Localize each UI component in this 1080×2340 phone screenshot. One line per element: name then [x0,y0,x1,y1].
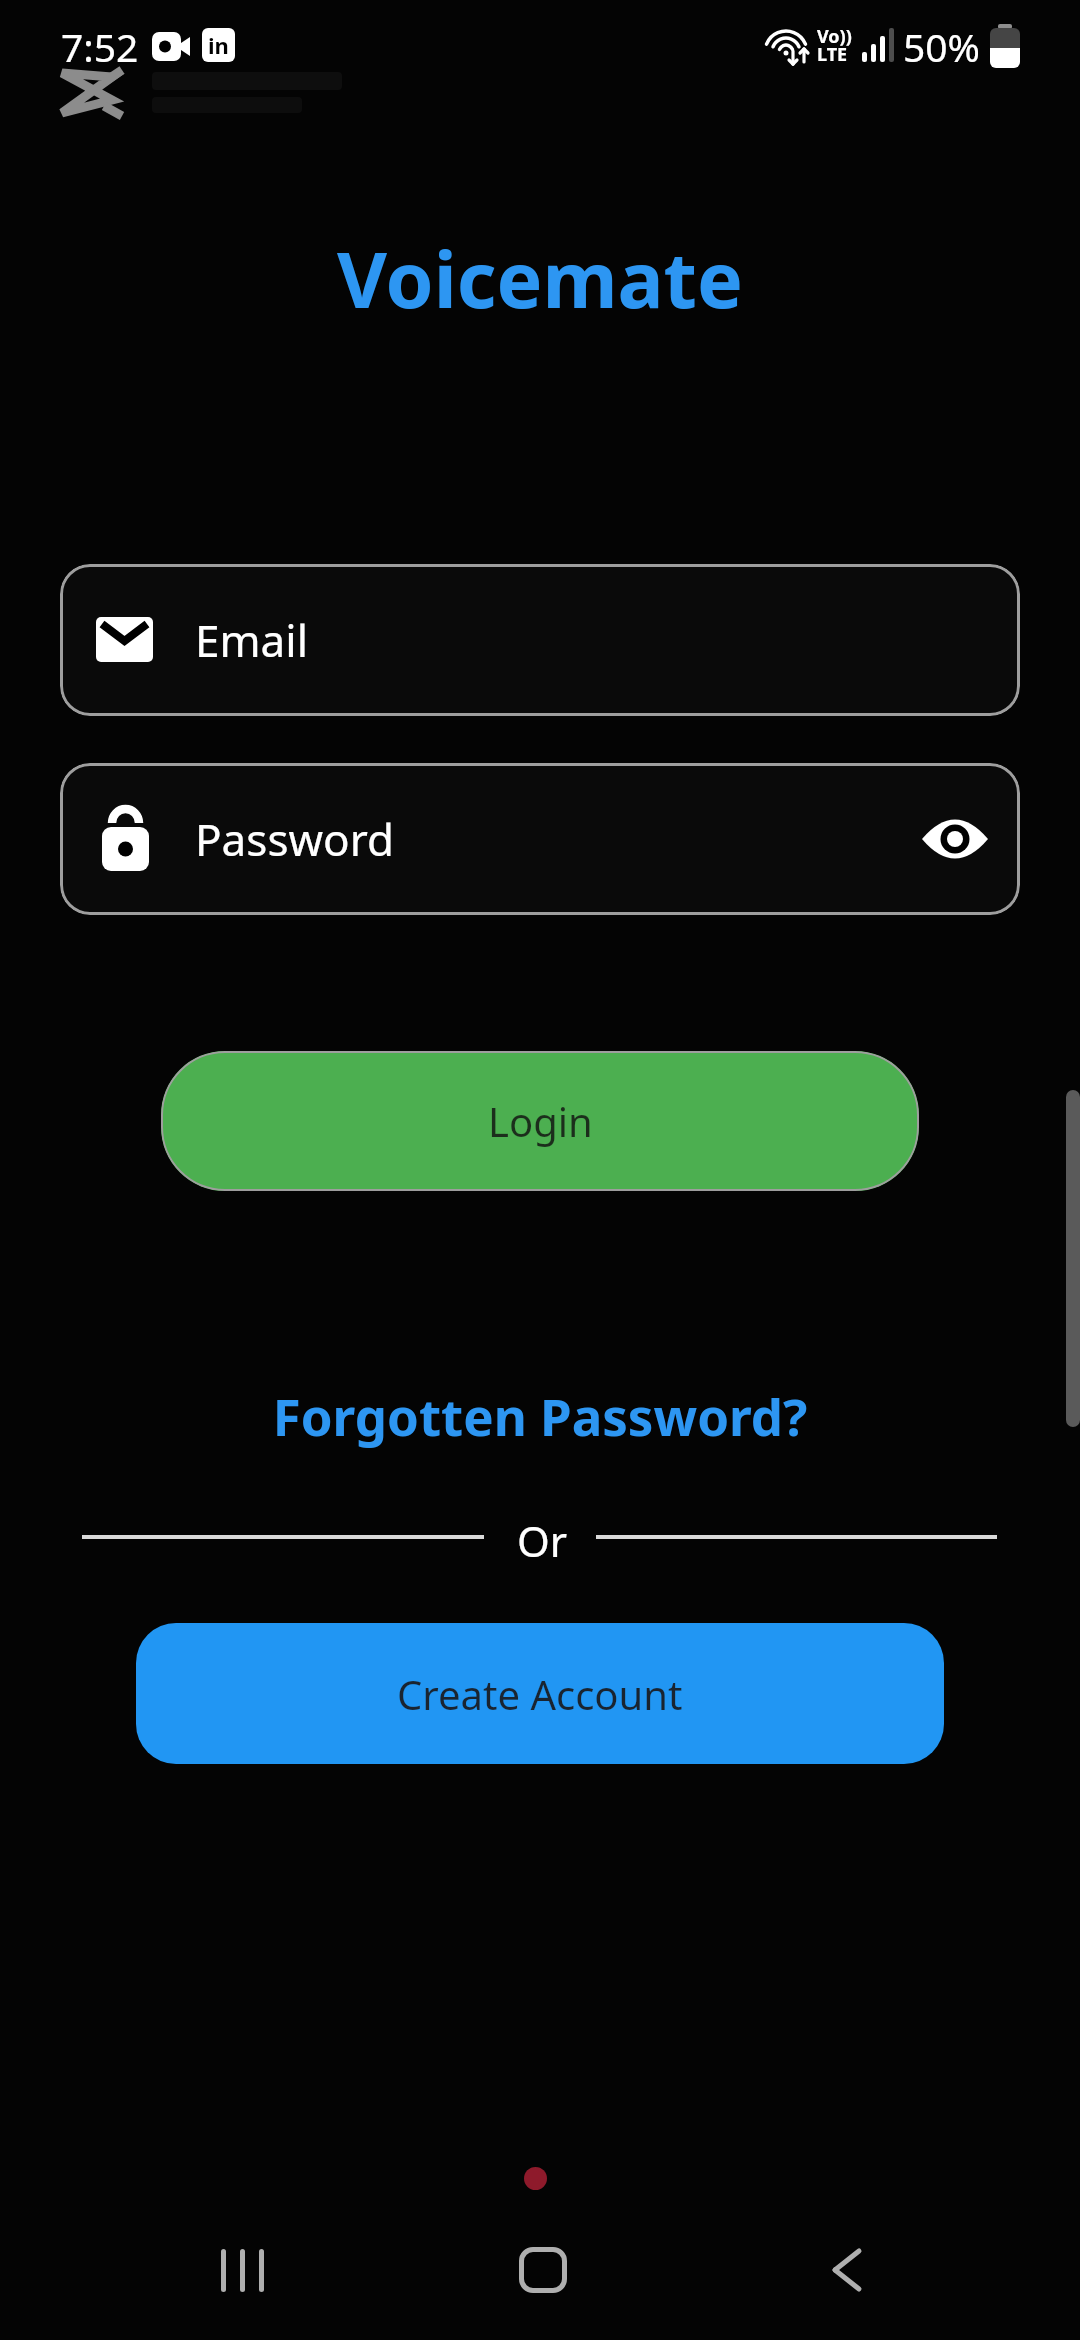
staticText: Create Account [397,1667,683,1721]
button[interactable]: Email [60,564,1020,716]
staticText: Password [195,809,395,869]
button[interactable] [922,814,988,864]
staticText: Email [195,610,308,670]
staticText: Or [517,1512,568,1569]
button[interactable]: Forgotten Password? [0,1381,1080,1450]
button[interactable]: Login [161,1051,919,1191]
button[interactable]: Create Account [136,1623,944,1764]
staticText: Vo)) [817,24,852,49]
staticText: Voicemate [0,226,1080,331]
button[interactable]: Password [60,763,1020,915]
staticText: 50% [903,20,981,73]
button[interactable] [221,2249,264,2292]
staticText: in [208,30,229,60]
button[interactable] [519,2247,567,2293]
button[interactable] [832,2249,862,2291]
staticText: LTE [817,42,848,67]
staticText: 7:52 [61,20,139,73]
staticText: Login [488,1094,593,1148]
